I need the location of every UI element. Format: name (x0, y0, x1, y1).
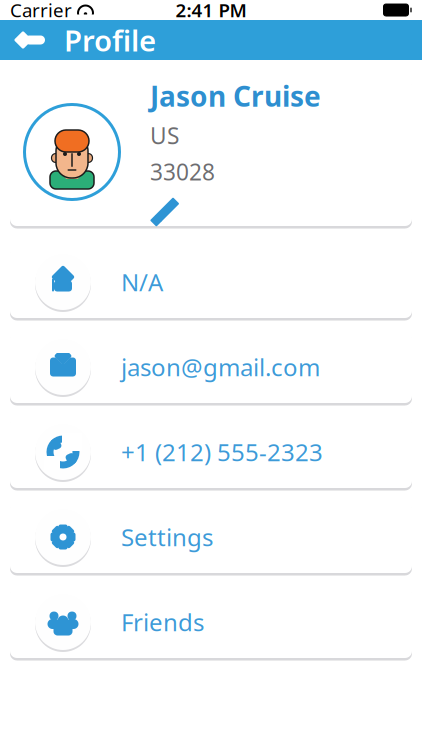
staticText: 2:41 PM (175, 0, 246, 22)
button[interactable]: Settings (10, 501, 412, 573)
staticText: US (150, 120, 179, 151)
button[interactable]: Friends (10, 586, 412, 658)
button[interactable]: jason@gmail.com (10, 331, 412, 403)
staticText: Friends (121, 606, 204, 638)
button[interactable]: Back (10, 20, 50, 60)
staticText: Jason Cruise (150, 77, 321, 114)
staticText: N/A (121, 266, 163, 298)
staticText: Profile (64, 20, 156, 59)
staticText: +1 (212) 555-2323 (121, 436, 323, 468)
button[interactable]: Edit profile (150, 193, 184, 227)
button[interactable]: N/A (10, 246, 412, 318)
staticText: Carrier (10, 0, 72, 22)
staticText: 33028 (150, 157, 215, 187)
staticText: jason@gmail.com (121, 351, 320, 383)
staticText: Settings (121, 521, 213, 553)
button[interactable]: +1 (212) 555-2323 (10, 416, 412, 488)
